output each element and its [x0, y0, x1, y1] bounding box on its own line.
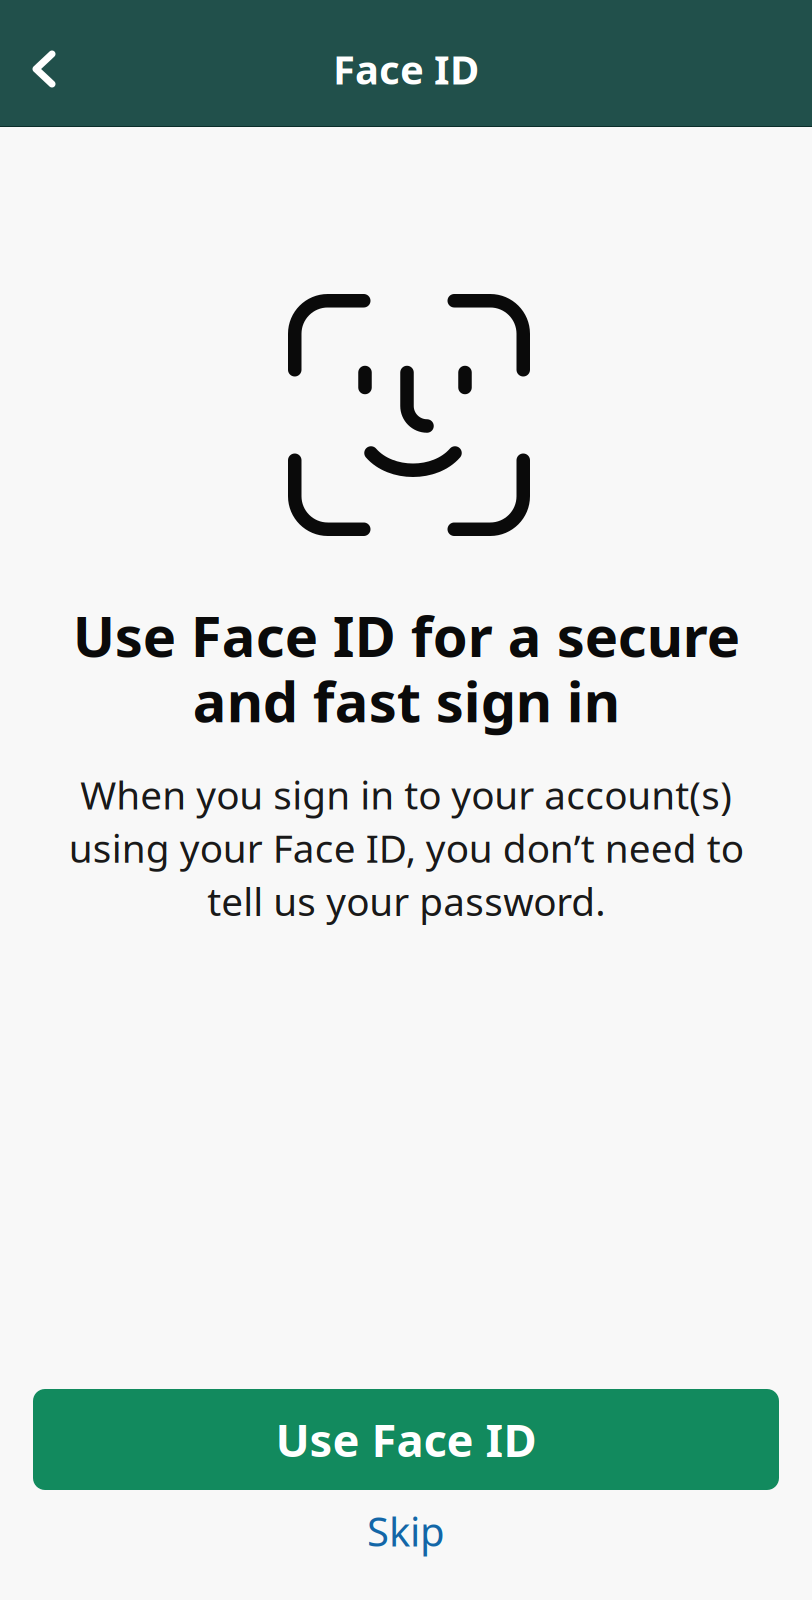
button[interactable]: Back [0, 24, 80, 114]
staticText: Use Face ID [275, 1409, 536, 1470]
staticText: When you sign in to your account(s) usin… [68, 769, 743, 927]
staticText: Face ID [333, 42, 479, 95]
button[interactable]: Use Face ID [33, 1389, 779, 1490]
staticText: Use Face ID for a secure and fast sign i… [72, 598, 739, 738]
staticText: Skip [367, 1504, 445, 1557]
button[interactable]: Skip [0, 1490, 812, 1572]
